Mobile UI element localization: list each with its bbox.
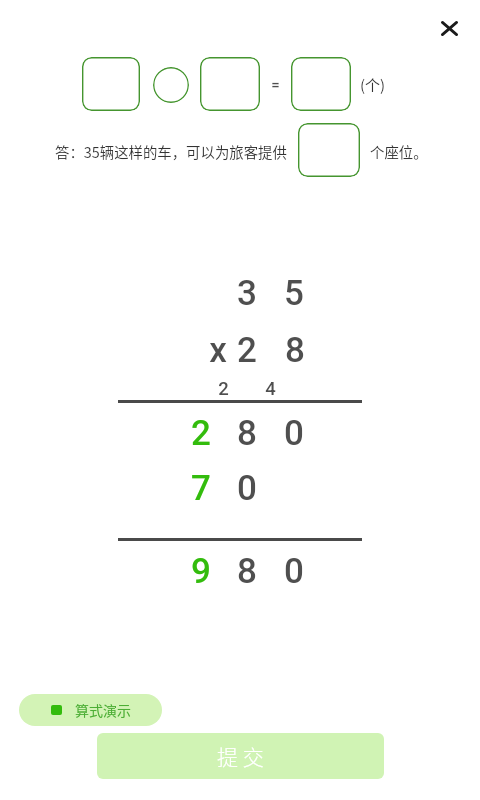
staticText: 提 交 xyxy=(217,741,264,771)
button[interactable]: Answer field xyxy=(82,57,140,111)
button[interactable]: 算式演示 xyxy=(19,694,162,726)
button[interactable]: Answer field xyxy=(298,123,360,177)
staticText: 2 xyxy=(218,378,229,400)
staticText: x xyxy=(209,330,227,371)
staticText: 7 xyxy=(191,468,211,509)
staticText: 3 xyxy=(237,273,257,314)
staticText: = xyxy=(271,76,280,94)
staticText: 算式演示 xyxy=(75,700,131,720)
button[interactable]: Answer field xyxy=(291,57,351,111)
staticText: 8 xyxy=(285,330,305,371)
staticText: 2 xyxy=(237,330,257,371)
staticText: 8 xyxy=(237,413,257,454)
staticText: 2 xyxy=(191,413,211,454)
staticText: 个座位。 xyxy=(370,141,428,162)
staticText: 5 xyxy=(284,273,304,314)
staticText: 0 xyxy=(284,551,304,592)
staticText: (个) xyxy=(360,74,386,96)
button[interactable]: Close xyxy=(429,8,470,48)
staticText: 答：35辆这样的车，可以为旅客提供 xyxy=(55,141,287,162)
button[interactable]: Answer field xyxy=(200,57,260,111)
staticText: 0 xyxy=(284,413,304,454)
staticText: 0 xyxy=(237,468,257,509)
button[interactable]: Operator field xyxy=(153,67,189,103)
button[interactable]: 提 交 xyxy=(97,733,384,779)
staticText: 8 xyxy=(237,551,257,592)
staticText: 9 xyxy=(191,551,211,592)
staticText: 4 xyxy=(265,378,276,400)
